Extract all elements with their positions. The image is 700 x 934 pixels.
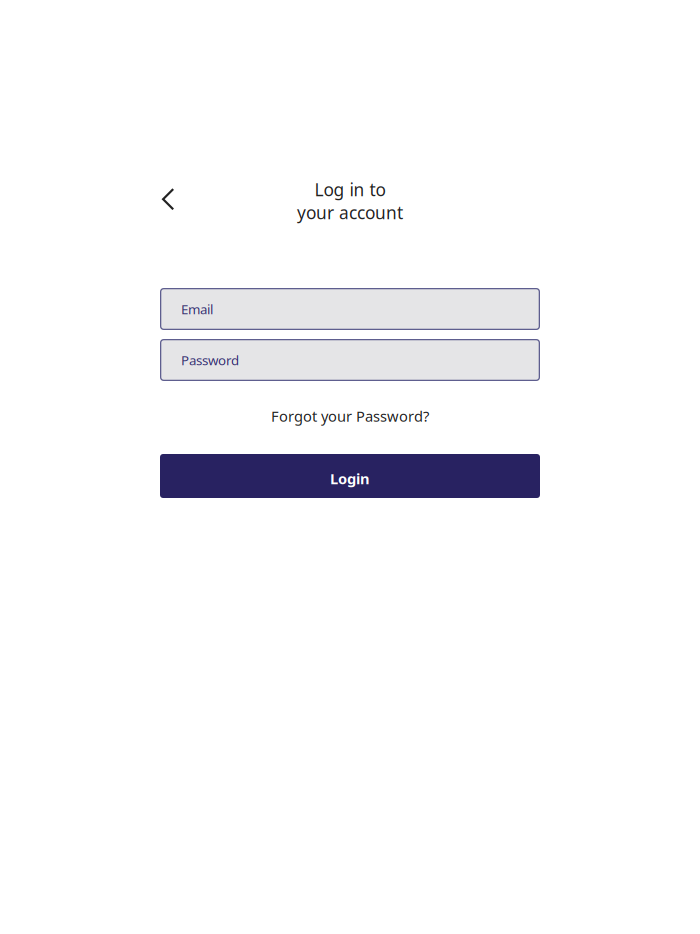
staticText: Log in to [314,178,385,201]
staticText: Forgot your Password? [271,406,429,426]
staticText: Password [181,351,239,369]
button[interactable]: Back [160,181,196,225]
button[interactable]: Login [160,454,540,498]
staticText: Email [181,300,213,318]
button[interactable]: Email [160,288,540,330]
button[interactable]: Password [160,339,540,381]
staticText: your account [297,201,403,224]
staticText: Login [330,469,370,488]
button[interactable]: Forgot your Password? [160,404,540,428]
